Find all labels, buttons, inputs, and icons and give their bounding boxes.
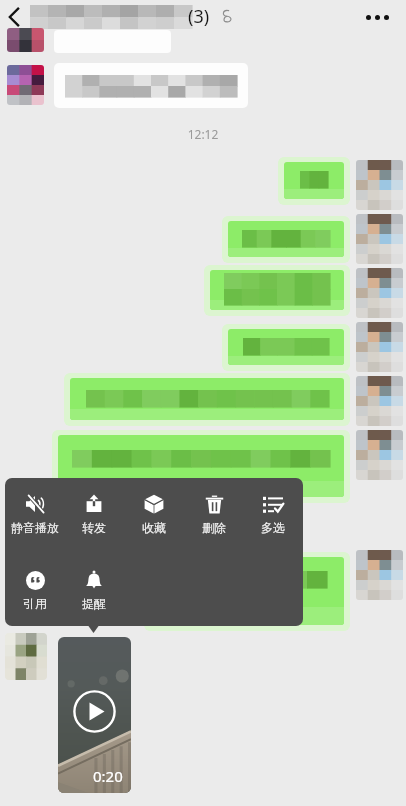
other: Muted [220, 9, 234, 23]
button[interactable]: Play video [58, 637, 131, 793]
button[interactable]: 转发 [64, 494, 124, 540]
button[interactable]: 删除 [184, 494, 244, 540]
button[interactable]: 引用 [5, 570, 65, 616]
button[interactable]: 多选 [243, 494, 303, 540]
staticText: 多选 [261, 520, 285, 535]
staticText: 引用 [23, 596, 47, 611]
button[interactable]: 收藏 [124, 494, 184, 540]
staticText: 转发 [82, 520, 106, 535]
button[interactable] [228, 329, 344, 365]
staticText: 0:20 [93, 766, 123, 786]
staticText: (3) [188, 4, 210, 29]
button[interactable] [150, 557, 344, 625]
staticText: 收藏 [142, 520, 166, 535]
button[interactable]: 静音播放 [5, 494, 65, 540]
button[interactable] [58, 435, 344, 497]
button[interactable]: Back [2, 4, 28, 30]
button[interactable]: More options [366, 6, 392, 28]
staticText: 静音播放 [11, 520, 59, 535]
button[interactable] [70, 378, 344, 420]
staticText: 删除 [202, 520, 226, 535]
button[interactable] [228, 221, 344, 257]
button[interactable] [210, 270, 344, 310]
button[interactable] [284, 162, 344, 199]
staticText: 12:12 [0, 126, 406, 142]
button[interactable]: 提醒 [64, 570, 124, 616]
staticText: 提醒 [82, 596, 106, 611]
